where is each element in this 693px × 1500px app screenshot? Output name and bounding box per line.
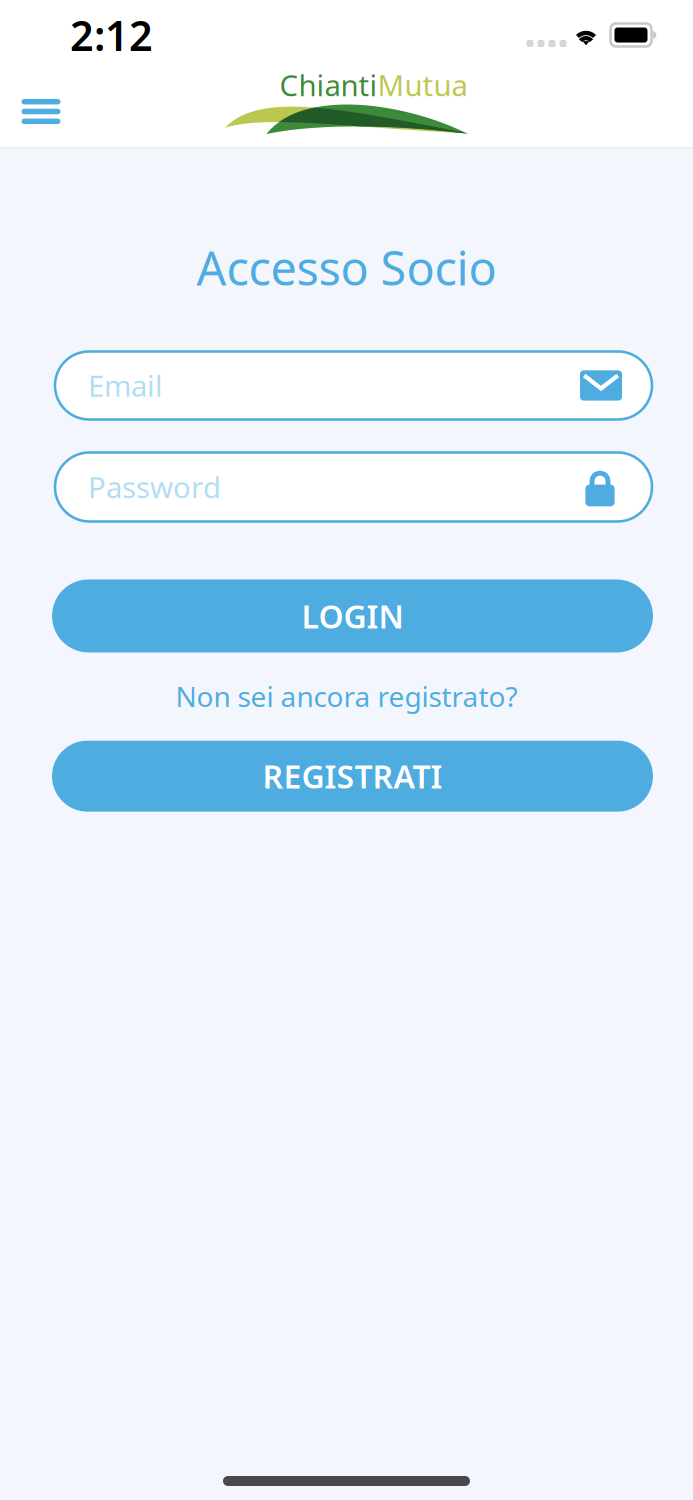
staticText: 2:12 bbox=[70, 8, 153, 62]
staticText: REGISTRATI bbox=[262, 755, 442, 797]
button[interactable]: Non sei ancora registrato? bbox=[155, 667, 537, 725]
staticText: Chianti bbox=[279, 65, 377, 104]
staticText: Email bbox=[88, 366, 163, 405]
staticText: Non sei ancora registrato? bbox=[175, 677, 517, 715]
staticText: Accesso Socio bbox=[196, 236, 496, 298]
button[interactable]: REGISTRATI bbox=[52, 741, 653, 812]
button[interactable]: Menu bbox=[0, 75, 82, 147]
button[interactable]: LOGIN bbox=[52, 579, 653, 652]
staticText: Mutua bbox=[377, 65, 467, 104]
staticText: LOGIN bbox=[301, 595, 403, 637]
staticText: Password bbox=[88, 467, 221, 506]
